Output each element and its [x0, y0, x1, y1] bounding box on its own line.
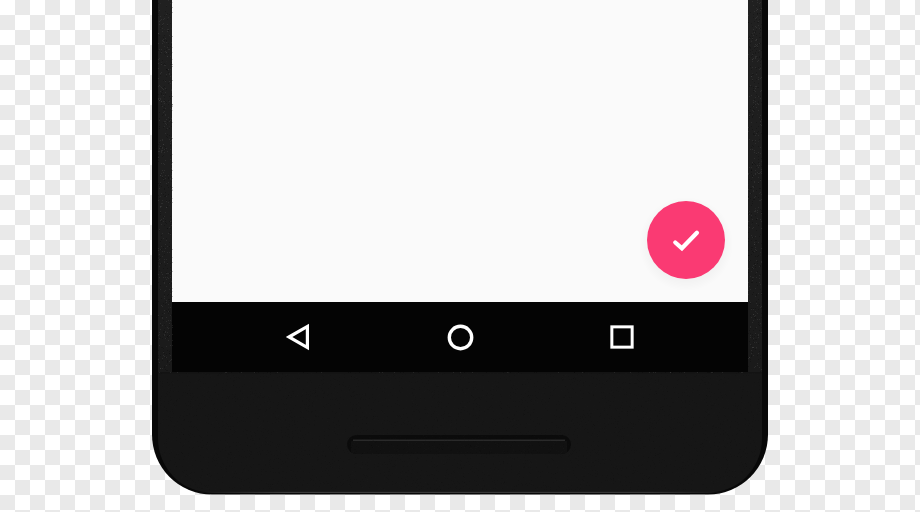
button[interactable]: Back: [264, 302, 332, 372]
button[interactable]: Recent apps: [588, 302, 656, 372]
button[interactable]: Home: [426, 302, 494, 372]
button[interactable]: Done: [647, 201, 725, 279]
